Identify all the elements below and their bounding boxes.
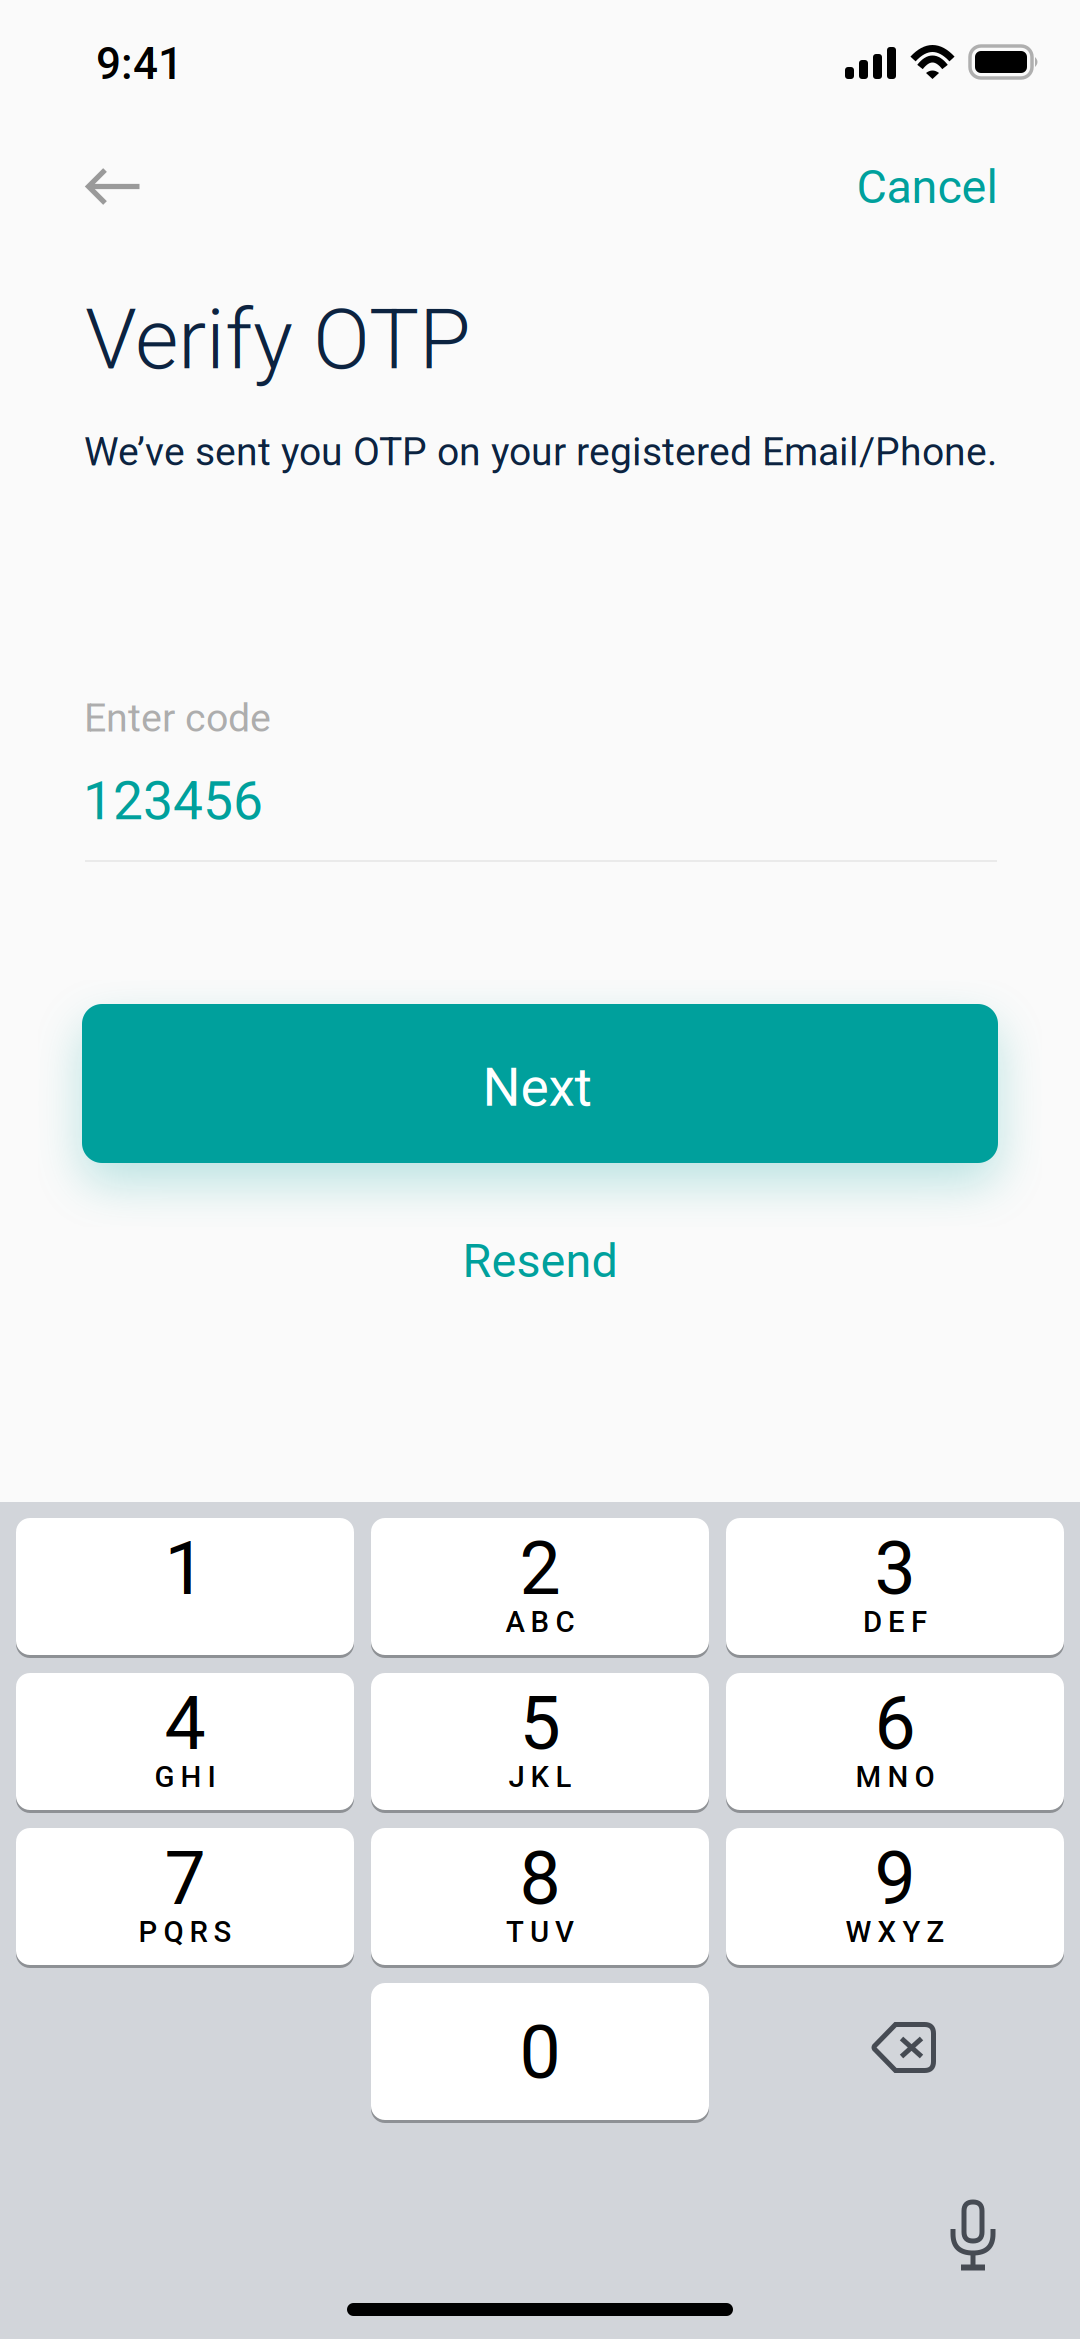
button[interactable]: 4 [16, 1673, 354, 1813]
staticText: 2 [519, 1526, 560, 1612]
button[interactable]: Dictate [901, 2179, 1045, 2289]
button[interactable]: 5 [371, 1673, 709, 1813]
staticText: 6 [874, 1681, 915, 1767]
staticText: 8 [519, 1836, 560, 1922]
staticText: 5 [519, 1681, 560, 1767]
button[interactable]: Delete [726, 1983, 1064, 2120]
button[interactable]: 7 [16, 1828, 354, 1968]
staticText: 4 [164, 1681, 205, 1767]
staticText: 7 [164, 1836, 205, 1922]
button[interactable]: Back [56, 143, 172, 231]
staticText: 123456 [83, 770, 263, 832]
button[interactable]: Resend [390, 1236, 690, 1286]
button[interactable]: 0 [371, 1983, 709, 2123]
staticText: 9 [874, 1836, 915, 1922]
staticText: GHI [154, 1760, 215, 1794]
button[interactable]: 1 [16, 1518, 354, 1658]
button[interactable]: 8 [371, 1828, 709, 1968]
button[interactable]: Next [82, 1004, 998, 1163]
staticText: 9:41 [96, 38, 183, 90]
staticText: Next [482, 1056, 591, 1119]
staticText: 1 [164, 1526, 205, 1612]
staticText: Cancel [856, 160, 997, 214]
staticText: TUV [506, 1915, 574, 1949]
staticText: 3 [874, 1526, 915, 1612]
button[interactable]: 9 [726, 1828, 1064, 1968]
button[interactable]: 2 [371, 1518, 709, 1658]
staticText: Resend [462, 1234, 617, 1288]
staticText: We’ve sent you OTP on your registered Em… [84, 429, 997, 475]
staticText: 0 [519, 2010, 560, 2096]
button[interactable]: 6 [726, 1673, 1064, 1813]
staticText: DEF [863, 1605, 927, 1639]
staticText: MNO [855, 1760, 934, 1794]
staticText: Enter code [84, 695, 271, 741]
button[interactable]: Cancel [829, 143, 1025, 231]
button[interactable]: 3 [726, 1518, 1064, 1658]
staticText: WXYZ [845, 1915, 944, 1949]
staticText: Verify OTP [85, 290, 471, 389]
staticText: JKL [508, 1760, 571, 1794]
staticText: PQRS [138, 1915, 231, 1949]
staticText: ABC [505, 1605, 574, 1639]
